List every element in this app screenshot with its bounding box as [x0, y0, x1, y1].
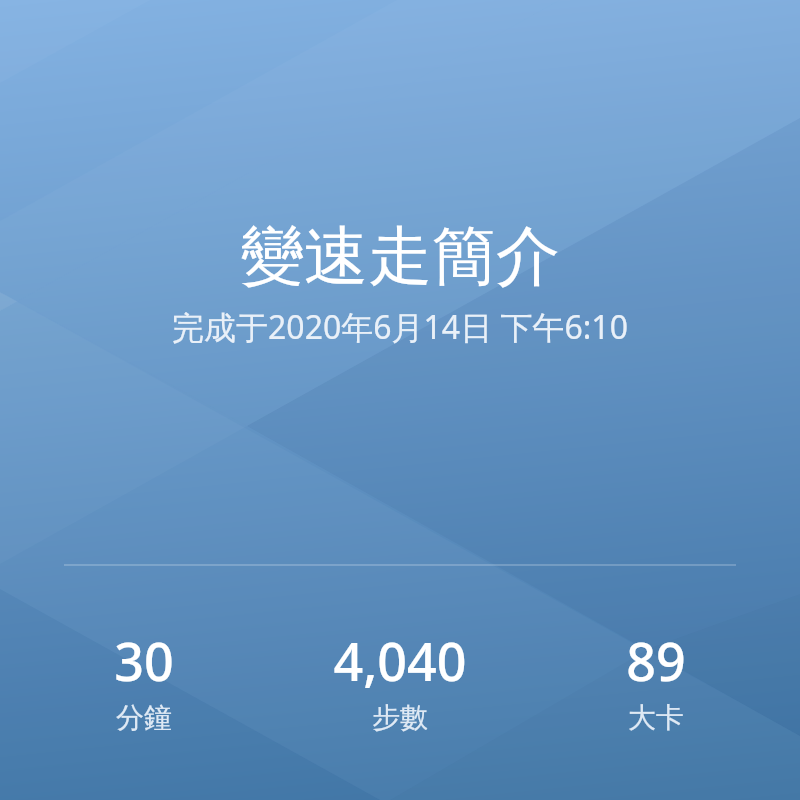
button[interactable]: 30 [16, 625, 272, 735]
staticText: 30 [114, 625, 174, 696]
staticText: 步數 [372, 700, 428, 735]
staticText: 4,040 [333, 625, 467, 696]
staticText: 變速走簡介 [240, 216, 560, 297]
staticText: 分鐘 [116, 700, 172, 735]
button[interactable]: 89 [528, 625, 784, 735]
staticText: 完成于2020年6月14日 下午6:10 [172, 305, 628, 349]
staticText: 大卡 [628, 700, 684, 735]
staticText: 89 [626, 625, 686, 696]
button[interactable]: 4,040 [272, 625, 528, 735]
